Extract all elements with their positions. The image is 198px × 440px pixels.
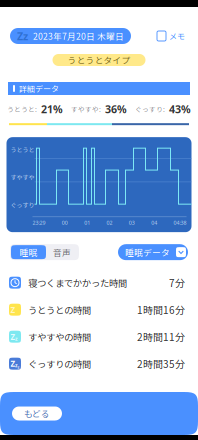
staticText: 2時間11分 bbox=[137, 329, 185, 344]
staticText: 睡眠 bbox=[19, 246, 37, 258]
staticText: 睡眠データ bbox=[125, 246, 170, 258]
button[interactable]: Zz bbox=[10, 28, 131, 44]
staticText: すやすや: bbox=[71, 104, 101, 114]
button[interactable]: もどる bbox=[12, 406, 62, 420]
staticText: 2023年7月20日 木曜日 bbox=[33, 30, 124, 42]
staticText: 23:29 bbox=[32, 219, 45, 226]
staticText: ぐっすり: bbox=[135, 104, 165, 114]
button[interactable]: Z bbox=[0, 323, 198, 350]
staticText: うとうとタイプ bbox=[67, 54, 130, 66]
staticText: 1時間16分 bbox=[137, 302, 185, 317]
staticText: 2時間35分 bbox=[137, 356, 185, 371]
button[interactable]: Z bbox=[0, 296, 198, 323]
staticText: Z bbox=[10, 332, 15, 342]
staticText: すやすやの時間 bbox=[28, 330, 91, 343]
staticText: 02 bbox=[106, 219, 112, 226]
staticText: Zz bbox=[17, 29, 28, 43]
staticText: z bbox=[17, 364, 19, 370]
button[interactable]: Z bbox=[0, 350, 198, 377]
staticText: z bbox=[15, 362, 18, 369]
staticText: 01 bbox=[84, 219, 90, 226]
staticText: うとうとの時間 bbox=[28, 303, 91, 316]
staticText: 音声 bbox=[53, 246, 71, 258]
staticText: メモ bbox=[169, 30, 185, 42]
staticText: 寝つくまでかかった時間 bbox=[28, 276, 127, 289]
staticText: ぐっすり bbox=[10, 200, 34, 209]
staticText: うとうと bbox=[10, 145, 34, 154]
staticText: 43% bbox=[169, 102, 191, 116]
staticText: 03 bbox=[129, 219, 135, 226]
staticText: 詳細データ bbox=[19, 83, 59, 94]
staticText: 00 bbox=[62, 219, 68, 226]
staticText: 7分 bbox=[169, 275, 185, 290]
staticText: ぐっすりの時間 bbox=[28, 357, 91, 370]
button[interactable]: 音声 bbox=[46, 245, 78, 259]
staticText: すやすや bbox=[10, 173, 34, 181]
staticText: 04:38 bbox=[173, 219, 186, 226]
button[interactable]: 睡眠データ bbox=[118, 244, 188, 260]
staticText: 36% bbox=[105, 102, 127, 116]
button[interactable]: メモ bbox=[157, 30, 198, 42]
staticText: 04 bbox=[151, 219, 157, 226]
staticText: z bbox=[15, 335, 18, 342]
staticText: Z bbox=[10, 305, 15, 315]
staticText: もどる bbox=[24, 407, 50, 420]
staticText: 21% bbox=[41, 102, 63, 116]
button[interactable]: 睡眠 bbox=[11, 245, 46, 259]
staticText: Z bbox=[10, 358, 15, 369]
staticText: うとうと: bbox=[7, 104, 37, 114]
button[interactable]: 寝つくまでかかった時間 bbox=[0, 269, 198, 296]
